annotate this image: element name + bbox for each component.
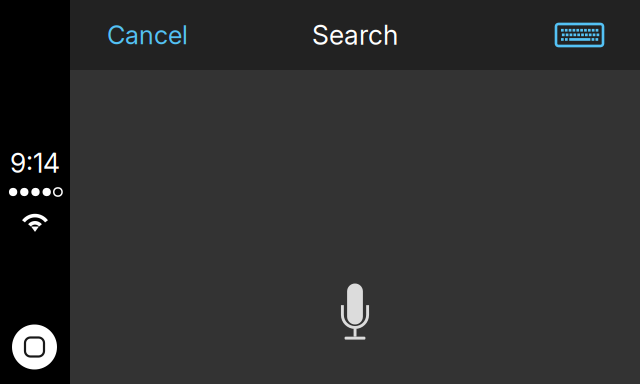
button[interactable]: Cancel: [107, 13, 188, 57]
button[interactable]: Home: [12, 324, 57, 369]
staticText: Search: [312, 19, 398, 51]
button[interactable]: Dictate: [341, 283, 369, 340]
staticText: 9:14: [10, 147, 60, 179]
staticText: Cancel: [107, 20, 188, 50]
button[interactable]: Show Keyboard: [556, 13, 603, 57]
